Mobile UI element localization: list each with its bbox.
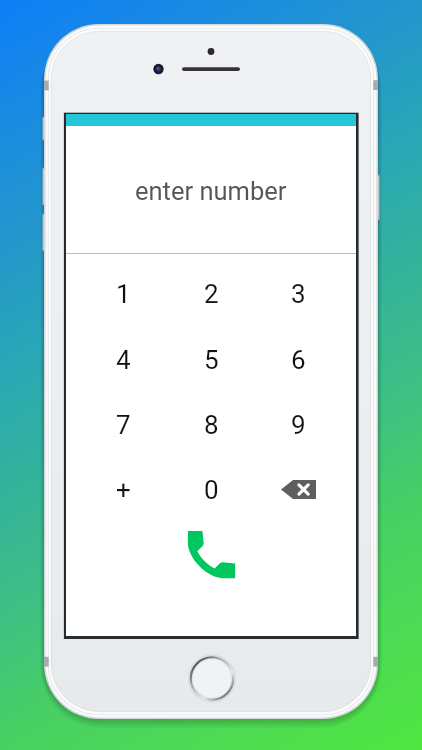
button[interactable]: 3 [255, 261, 342, 326]
staticText: 3 [291, 279, 306, 309]
staticText: 7 [116, 410, 131, 440]
button[interactable]: enter number [66, 126, 356, 266]
staticText: 6 [291, 345, 306, 375]
button[interactable]: 2 [168, 261, 255, 326]
staticText: 8 [204, 410, 219, 440]
button[interactable]: 8 [168, 392, 255, 457]
button[interactable]: + [80, 457, 167, 522]
button[interactable]: 0 [168, 457, 255, 522]
staticText: 5 [204, 345, 219, 375]
button[interactable]: 9 [255, 392, 342, 457]
button[interactable]: Delete [255, 457, 342, 522]
other: Delete [281, 480, 316, 499]
button[interactable]: Call [180, 523, 243, 586]
staticText: 9 [291, 410, 306, 440]
button[interactable]: 4 [80, 327, 167, 392]
button[interactable]: 7 [80, 392, 167, 457]
staticText: 2 [204, 279, 219, 309]
staticText: enter number [135, 176, 287, 206]
button[interactable]: 5 [168, 327, 255, 392]
staticText: + [116, 475, 131, 505]
staticText: 0 [204, 475, 219, 505]
staticText: 4 [116, 345, 131, 375]
staticText: 1 [116, 279, 131, 309]
button[interactable]: 1 [80, 261, 167, 326]
button[interactable]: 6 [255, 327, 342, 392]
